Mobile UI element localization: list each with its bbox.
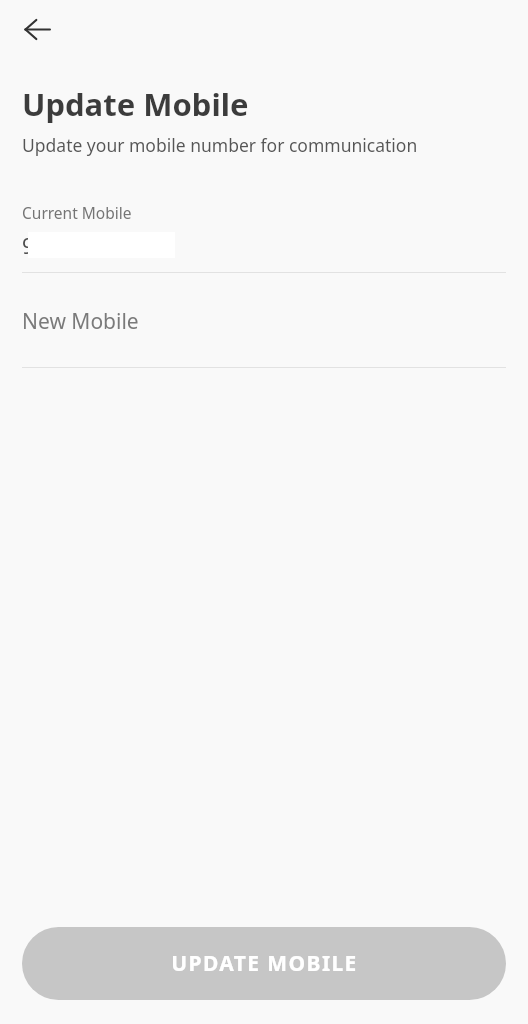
button[interactable]: New Mobile — [0, 305, 528, 368]
staticText: New Mobile — [22, 307, 139, 336]
button[interactable]: UPDATE MOBILE — [22, 927, 506, 1000]
staticText: Update Mobile — [22, 83, 249, 125]
staticText: 9876543210 — [22, 232, 143, 261]
button[interactable]: Back — [14, 6, 60, 52]
button[interactable]: 9876543210 — [0, 232, 528, 261]
staticText: Current Mobile — [22, 202, 132, 223]
staticText: UPDATE MOBILE — [171, 949, 358, 978]
staticText: Update your mobile number for communicat… — [22, 133, 418, 157]
